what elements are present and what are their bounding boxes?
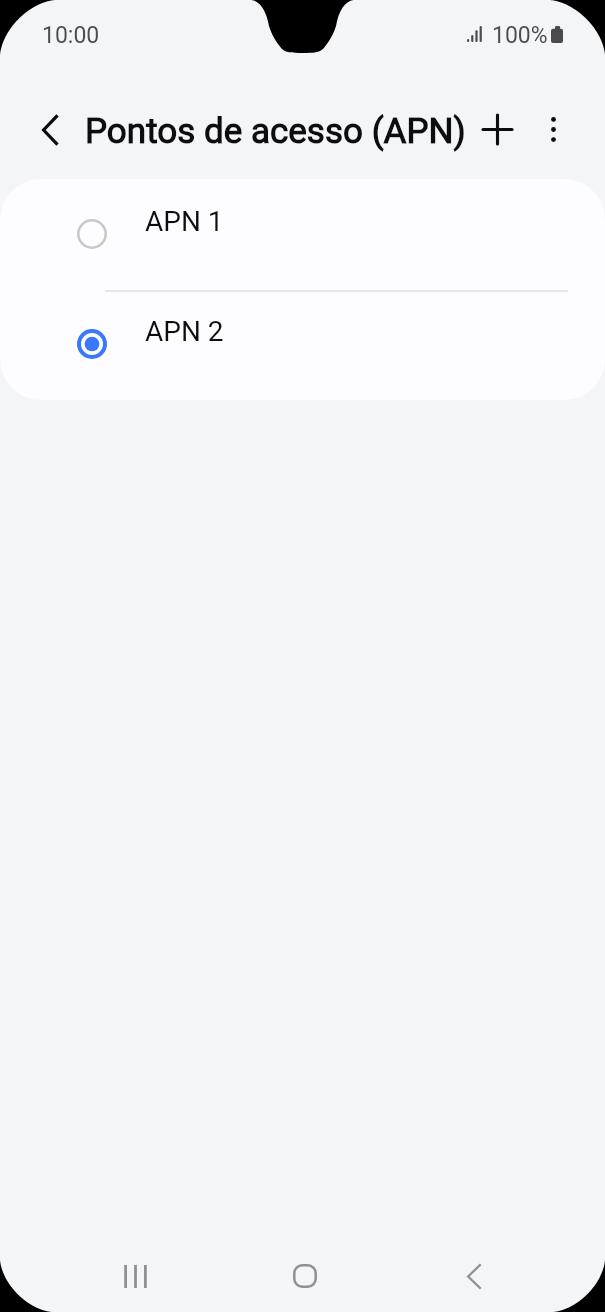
button[interactable]: Add APN	[473, 105, 522, 154]
staticText: 100%	[492, 22, 548, 49]
button[interactable]: Home	[275, 1246, 335, 1306]
button[interactable]: APN 1	[0, 179, 605, 289]
staticText: APN 1	[145, 205, 224, 238]
button[interactable]: Back	[25, 105, 74, 154]
button[interactable]: More options	[529, 105, 578, 154]
button[interactable]: APN 2	[0, 289, 605, 399]
button[interactable]: Recents	[105, 1246, 165, 1306]
staticText: 10:00	[42, 22, 100, 49]
staticText: Pontos de acesso (APN)	[85, 111, 466, 152]
button[interactable]: Back	[444, 1246, 504, 1306]
staticText: APN 2	[145, 315, 224, 348]
